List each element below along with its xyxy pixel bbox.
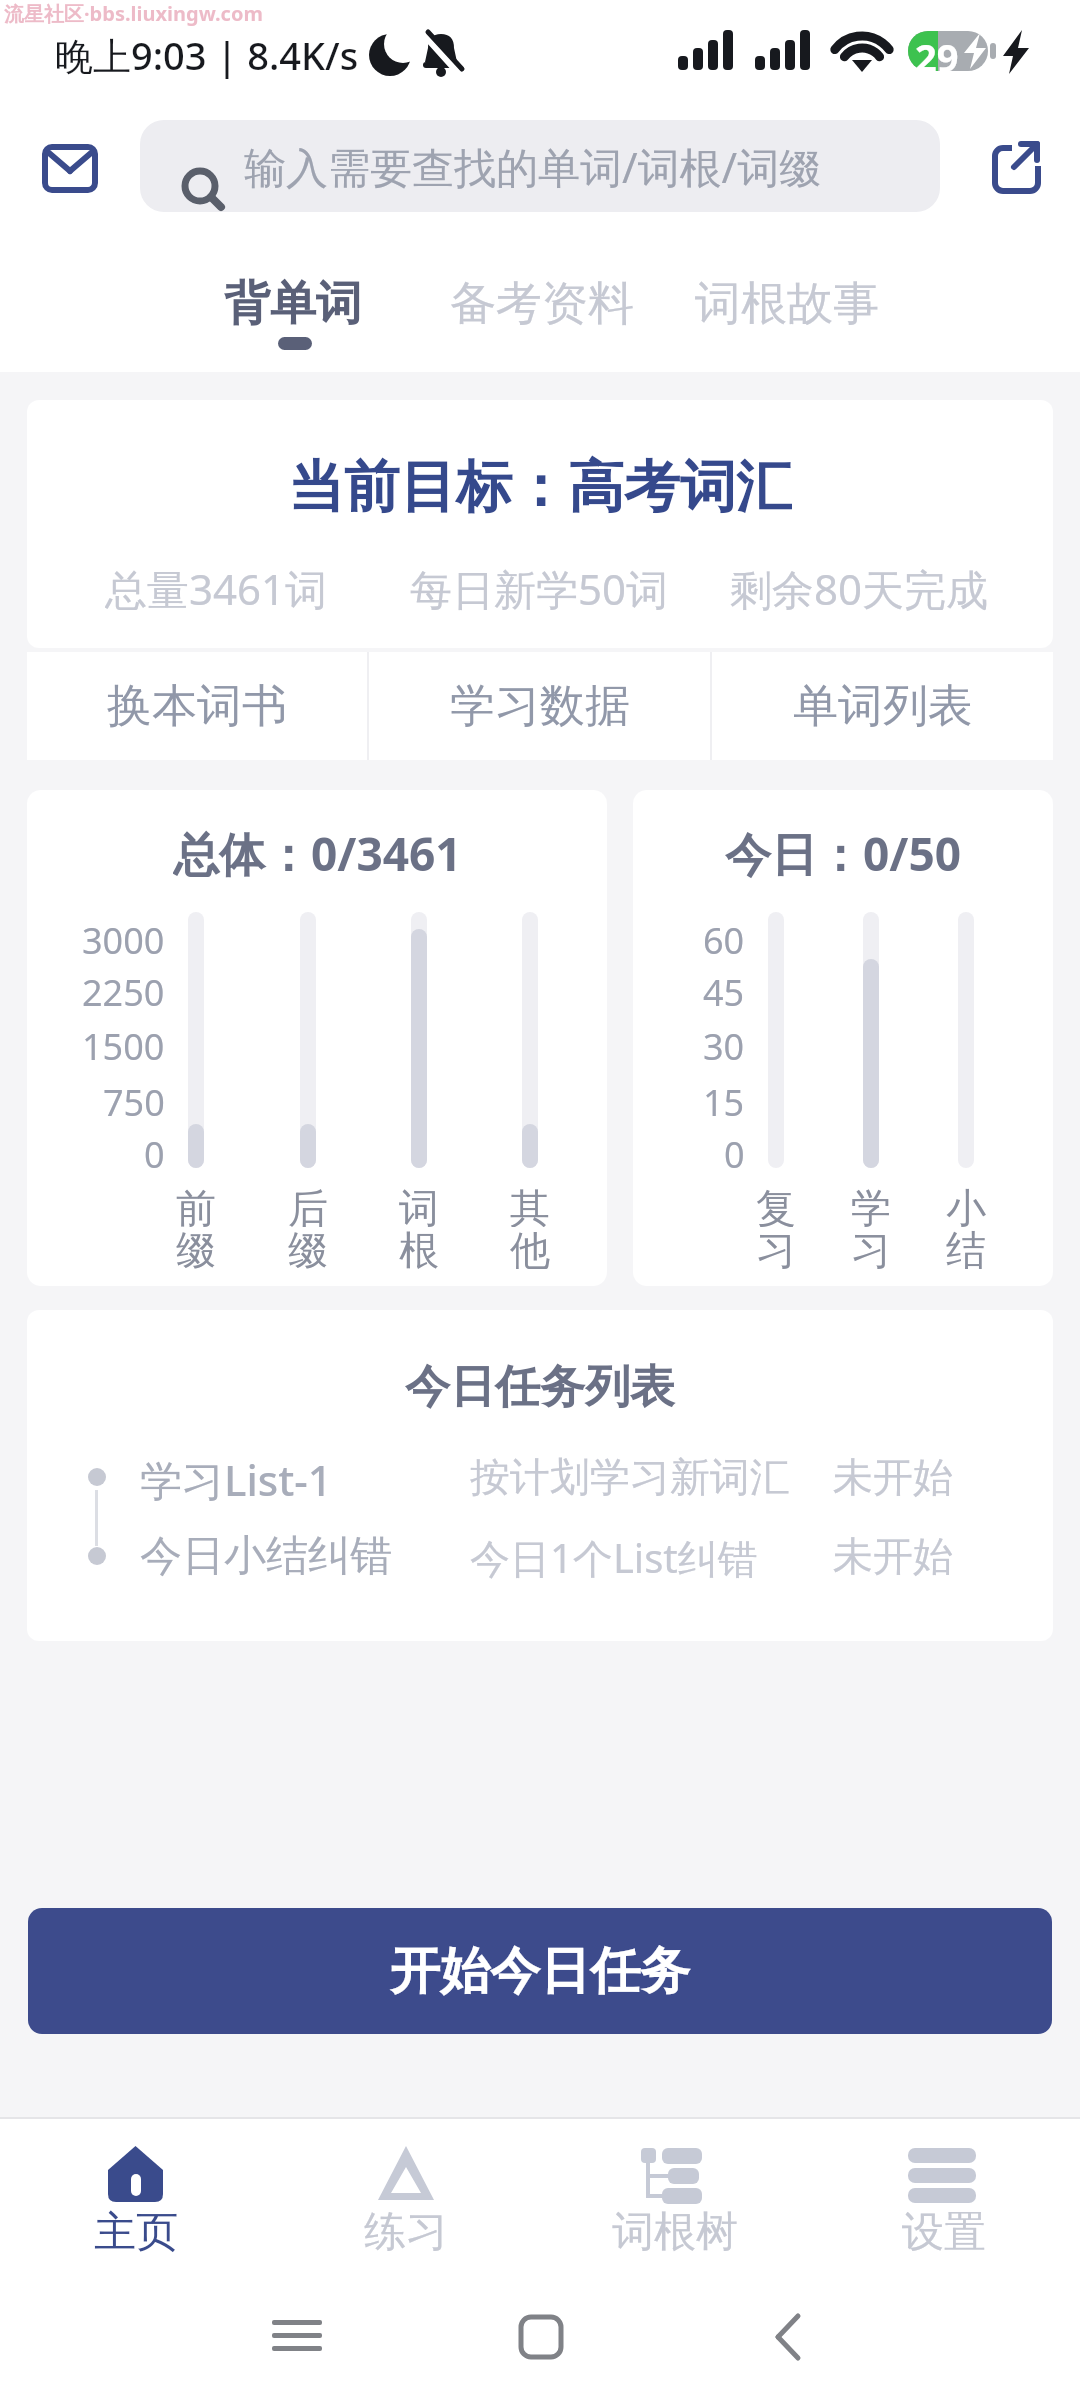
- staticText: 学习List-1: [140, 1451, 332, 1503]
- staticText: 当前目标：高考词汇: [288, 452, 792, 522]
- staticText: 剩余80天完成: [730, 560, 989, 612]
- staticText: 750: [103, 1078, 165, 1122]
- staticText: 结: [946, 1225, 986, 1269]
- staticText: 前: [176, 1183, 216, 1227]
- staticText: 开始今日任务: [390, 1940, 690, 2003]
- staticText: 15: [703, 1078, 745, 1122]
- staticText: 总量3461词: [105, 560, 328, 612]
- staticText: 1500: [82, 1022, 165, 1066]
- staticText: 词根树: [612, 2206, 738, 2254]
- staticText: 60: [703, 916, 745, 960]
- staticText: 30: [703, 1022, 745, 1066]
- staticText: 小: [946, 1183, 986, 1227]
- staticText: 设置: [902, 2206, 986, 2254]
- staticText: 缀: [288, 1225, 328, 1269]
- staticText: 2250: [82, 968, 165, 1012]
- staticText: 根: [399, 1225, 439, 1269]
- button[interactable]: [884, 2130, 1004, 2260]
- staticText: 单词列表: [793, 678, 973, 735]
- button[interactable]: [518, 2314, 564, 2360]
- staticText: 今日：0/50: [725, 822, 962, 880]
- staticText: 晚上9:03 | 8.4K/s: [55, 29, 359, 81]
- staticText: 未开始: [833, 1531, 953, 1581]
- button[interactable]: 换本词书: [27, 652, 367, 760]
- staticText: 缀: [176, 1225, 216, 1269]
- staticText: 背单词: [224, 275, 362, 333]
- button[interactable]: [272, 2316, 324, 2356]
- staticText: 3000: [82, 916, 165, 960]
- staticText: 学: [851, 1183, 891, 1227]
- staticText: 流星社区·bbs.liuxingw.com: [4, 0, 263, 26]
- button[interactable]: 学习数据: [369, 652, 710, 760]
- staticText: 按计划学习新词汇: [470, 1452, 790, 1502]
- staticText: 换本词书: [107, 678, 287, 735]
- button[interactable]: 输入需要查找的单词/词根/词缀: [140, 120, 940, 212]
- staticText: 练习: [364, 2206, 448, 2254]
- staticText: 今日1个List纠错: [470, 1530, 758, 1582]
- button[interactable]: [990, 140, 1046, 196]
- button[interactable]: [615, 2130, 735, 2260]
- staticText: 0: [144, 1130, 165, 1174]
- button[interactable]: [42, 140, 98, 196]
- button[interactable]: [770, 2312, 806, 2362]
- staticText: 每日新学50词: [410, 560, 669, 612]
- staticText: 总体：0/3461: [173, 822, 462, 880]
- staticText: 词: [399, 1183, 439, 1227]
- button[interactable]: 词根故事: [677, 275, 897, 333]
- staticText: 未开始: [833, 1452, 953, 1502]
- staticText: 主页: [94, 2206, 178, 2254]
- staticText: 今日小结纠错: [140, 1530, 392, 1582]
- button[interactable]: 开始今日任务: [28, 1908, 1052, 2034]
- staticText: 其: [510, 1183, 550, 1227]
- button[interactable]: 备考资料: [432, 275, 652, 333]
- staticText: 29: [915, 31, 959, 73]
- staticText: 习: [851, 1225, 891, 1269]
- staticText: 输入需要查找的单词/词根/词缀: [244, 138, 822, 195]
- staticText: 学习数据: [450, 678, 630, 735]
- button[interactable]: [140, 1451, 1040, 1503]
- staticText: 他: [510, 1225, 550, 1269]
- button[interactable]: [76, 2130, 196, 2260]
- staticText: 习: [756, 1225, 796, 1269]
- staticText: 今日任务列表: [405, 1359, 675, 1416]
- staticText: 备考资料: [450, 275, 634, 333]
- staticText: 45: [703, 968, 745, 1012]
- staticText: 词根故事: [695, 275, 879, 333]
- button[interactable]: 单词列表: [712, 652, 1053, 760]
- staticText: 0: [724, 1130, 745, 1174]
- staticText: 复: [756, 1183, 796, 1227]
- button[interactable]: 背单词: [210, 275, 375, 333]
- staticText: 后: [288, 1183, 328, 1227]
- button[interactable]: [346, 2130, 466, 2260]
